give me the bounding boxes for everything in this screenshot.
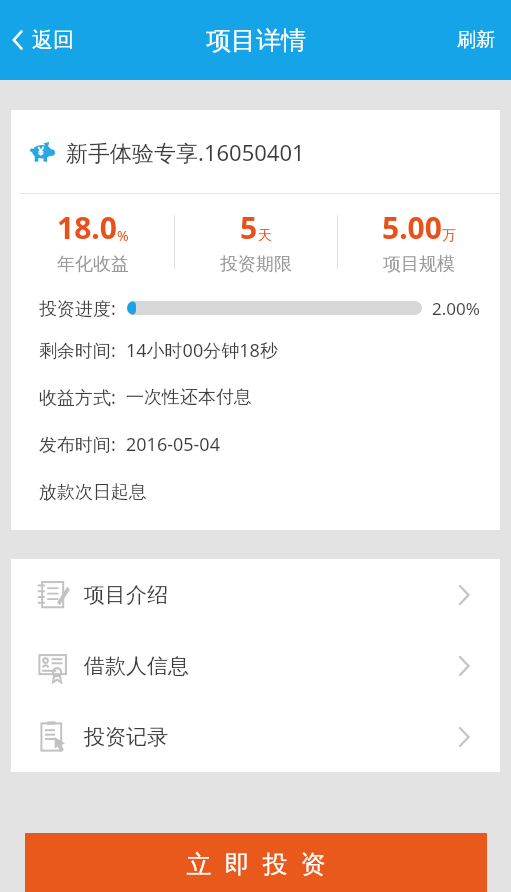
staticText: 一次性还本付息 (126, 386, 252, 409)
staticText: 年化收益 (57, 253, 129, 276)
staticText: 万 (442, 227, 456, 245)
staticText: 剩余时间: (39, 338, 116, 363)
staticText: 18.0 (57, 207, 117, 248)
button[interactable]: 投资记录 (11, 701, 500, 772)
button[interactable]: 刷新 (441, 20, 511, 60)
staticText: 14小时00分钟18秒 (126, 338, 278, 363)
staticText: 发布时间: (39, 432, 116, 457)
staticText: % (117, 226, 129, 245)
staticText: 天 (258, 227, 272, 245)
staticText: 项目详情 (206, 25, 306, 56)
button[interactable]: 返回 (0, 21, 88, 59)
staticText: 返回 (32, 27, 74, 53)
staticText: 投资进度: (39, 296, 116, 321)
button[interactable]: 立 即 投 资 (25, 833, 487, 892)
staticText: 5 (240, 207, 258, 248)
staticText: 项目介绍 (84, 582, 168, 608)
staticText: 借款人信息 (84, 653, 189, 679)
staticText: 立 即 投 资 (186, 846, 326, 880)
staticText: 项目规模 (383, 253, 455, 276)
staticText: 2016-05-04 (126, 432, 220, 457)
staticText: 新手体验专享.16050401 (66, 137, 305, 167)
staticText: 投资期限 (220, 253, 292, 276)
button[interactable]: 借款人信息 (11, 630, 500, 701)
staticText: 投资记录 (84, 724, 168, 750)
staticText: 收益方式: (39, 385, 116, 410)
staticText: 放款次日起息 (39, 481, 147, 504)
staticText: 5.00 (382, 207, 442, 248)
staticText: 2.00% (432, 297, 480, 320)
button[interactable]: 项目介绍 (11, 559, 500, 630)
staticText: 刷新 (457, 28, 495, 52)
